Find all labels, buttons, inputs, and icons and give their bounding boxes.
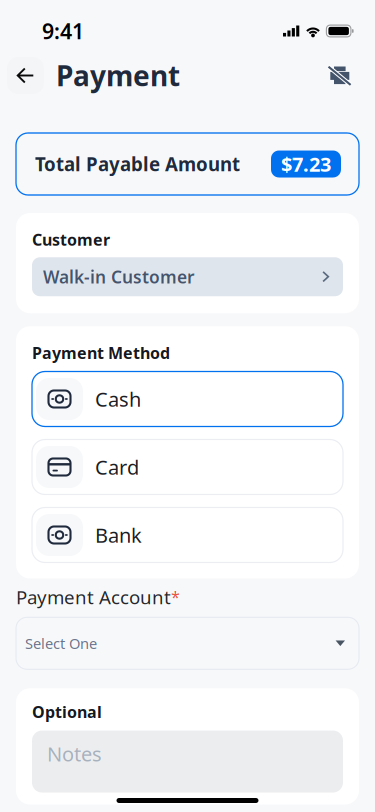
staticText: * xyxy=(171,586,180,607)
staticText: Payment xyxy=(56,57,180,94)
staticText: Select One xyxy=(25,633,97,653)
staticText: Walk-in Customer xyxy=(43,265,195,288)
button[interactable]: Bank xyxy=(32,507,343,562)
button[interactable]: Cash xyxy=(32,371,343,426)
button[interactable]: Printer off xyxy=(323,58,357,92)
button[interactable]: Card xyxy=(32,439,343,494)
staticText: Card xyxy=(95,454,139,480)
button[interactable]: Select One xyxy=(16,617,359,669)
staticText: Notes xyxy=(47,740,102,767)
staticText: Total Payable Amount xyxy=(35,152,240,176)
staticText: Payment Account xyxy=(16,584,171,609)
button[interactable]: Back xyxy=(7,57,44,94)
button[interactable]: Walk-in Customer xyxy=(32,257,343,296)
staticText: Customer xyxy=(32,229,110,250)
staticText: 9:41 xyxy=(42,17,84,45)
staticText: Optional xyxy=(32,701,102,722)
staticText: Cash xyxy=(95,386,141,412)
staticText: $7.23 xyxy=(281,151,331,177)
staticText: Bank xyxy=(95,522,142,548)
staticText: Payment Method xyxy=(32,342,170,363)
